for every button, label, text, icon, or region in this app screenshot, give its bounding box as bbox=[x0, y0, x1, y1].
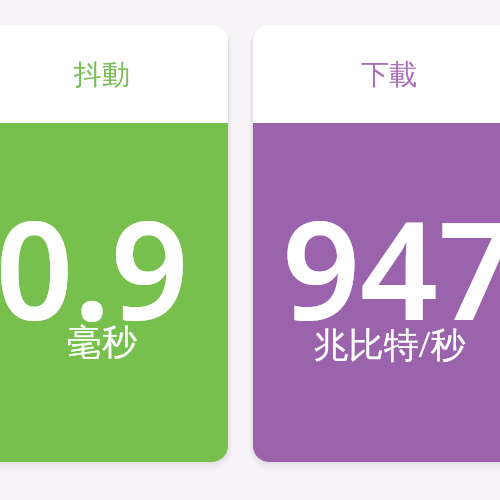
staticText: 下載 bbox=[361, 57, 417, 92]
staticText: 0.9 bbox=[0, 175, 189, 360]
staticText: 兆比特/秒 bbox=[313, 320, 466, 368]
button[interactable]: 下載 bbox=[253, 25, 500, 462]
staticText: 抖動 bbox=[74, 57, 130, 92]
staticText: 947 bbox=[282, 175, 500, 360]
staticText: 毫秒 bbox=[67, 320, 137, 364]
button[interactable]: 抖動 bbox=[0, 25, 228, 462]
